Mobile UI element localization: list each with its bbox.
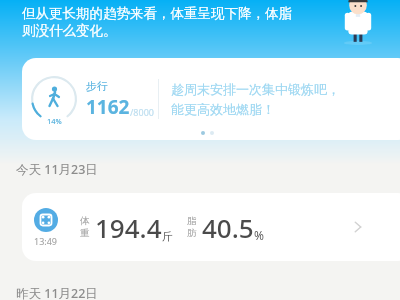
staticText: 斤 — [162, 229, 173, 243]
staticText: 今天 11月23日 — [16, 161, 98, 178]
staticText: 40.5 — [202, 210, 254, 245]
staticText: 肪 — [187, 227, 197, 239]
staticText: 重 — [80, 227, 90, 239]
staticText: 步行 — [86, 79, 108, 93]
staticText: 趁周末安排一次集中锻炼吧，能更高效地燃脂！ — [171, 81, 346, 118]
staticText: 体 — [80, 215, 90, 227]
staticText: 则没什么变化。 — [22, 22, 117, 39]
button[interactable]: 13:49 — [22, 193, 400, 261]
staticText: 14% — [47, 116, 62, 126]
staticText: 13:49 — [34, 235, 58, 247]
staticText: 昨天 11月22日 — [16, 285, 98, 300]
staticText: /8000 — [130, 106, 154, 118]
staticText: % — [254, 227, 264, 243]
staticText: 但从更长期的趋势来看，体重呈现下降，体脂 — [22, 5, 292, 22]
staticText: 脂 — [187, 215, 197, 227]
staticText: 194.4 — [95, 210, 162, 245]
button[interactable]: 14% — [22, 58, 400, 140]
other: 详情 — [350, 219, 366, 235]
staticText: 1162 — [86, 94, 130, 120]
